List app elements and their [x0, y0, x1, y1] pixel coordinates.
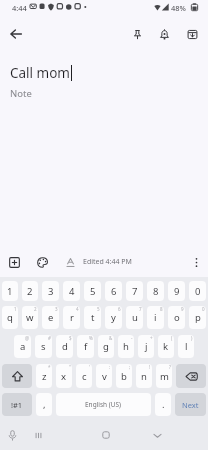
button[interactable]: Add — [2, 250, 26, 274]
button[interactable]: Hide keyboard — [144, 422, 170, 448]
button[interactable]: k — [158, 335, 174, 358]
staticText: m — [160, 370, 169, 383]
button[interactable]: 4 — [63, 281, 80, 301]
button[interactable]: b — [116, 364, 132, 388]
button[interactable]: . — [155, 393, 171, 416]
button[interactable]: 2 — [22, 281, 38, 301]
staticText: 6 — [111, 285, 117, 298]
staticText: 9 — [181, 306, 184, 312]
staticText: f — [84, 340, 88, 353]
staticText: 0 — [202, 306, 205, 312]
button[interactable]: r — [63, 306, 80, 329]
staticText: y — [111, 311, 116, 324]
staticText: 1 — [7, 285, 13, 298]
staticText: 7 — [132, 285, 138, 298]
button[interactable]: Next — [175, 393, 206, 416]
button[interactable]: j — [138, 335, 154, 358]
staticText: w — [26, 311, 34, 324]
button[interactable]: w — [22, 306, 38, 329]
button[interactable]: Reminder — [150, 20, 178, 48]
button[interactable]: Shift — [2, 364, 32, 388]
button[interactable]: o — [168, 306, 185, 329]
staticText: Next — [182, 400, 199, 410]
staticText: 48% — [171, 3, 186, 13]
staticText: ) — [191, 335, 193, 341]
button[interactable]: Archive — [178, 20, 206, 48]
staticText: x — [61, 370, 67, 383]
button[interactable]: f — [77, 335, 94, 358]
button[interactable]: q — [2, 306, 18, 329]
staticText: h — [123, 340, 129, 353]
button[interactable]: v — [96, 364, 112, 388]
staticText: l — [185, 340, 188, 353]
staticText: ( — [171, 335, 173, 341]
button[interactable]: i — [147, 306, 164, 329]
button[interactable]: More options — [184, 250, 208, 274]
staticText: i — [154, 311, 157, 324]
button[interactable]: Backspace — [176, 364, 206, 388]
button[interactable]: c — [76, 364, 92, 388]
staticText: e — [48, 311, 54, 324]
button[interactable]: p — [189, 306, 206, 329]
button[interactable]: Voice input — [0, 422, 25, 448]
button[interactable]: 8 — [147, 281, 164, 301]
button[interactable]: s — [35, 335, 52, 358]
staticText: !#1 — [11, 400, 23, 410]
button[interactable]: 9 — [168, 281, 185, 301]
staticText: . — [162, 398, 165, 411]
button[interactable]: u — [126, 306, 143, 329]
staticText: 4:44 — [12, 3, 27, 13]
staticText: " — [69, 364, 71, 370]
button[interactable]: t — [84, 306, 101, 329]
staticText: s — [41, 340, 46, 353]
button[interactable]: 3 — [42, 281, 59, 301]
button[interactable]: 6 — [105, 281, 122, 301]
button[interactable]: 5 — [84, 281, 101, 301]
button[interactable]: z — [36, 364, 52, 388]
button[interactable]: e — [42, 306, 59, 329]
staticText: g — [103, 340, 109, 353]
staticText: @ — [25, 335, 30, 341]
staticText: ' — [89, 364, 91, 370]
button[interactable]: Back — [2, 20, 30, 48]
staticText: q — [7, 311, 13, 324]
staticText: n — [141, 370, 147, 383]
staticText: 8 — [160, 306, 163, 312]
button[interactable]: Home — [93, 422, 119, 448]
staticText: r — [70, 311, 74, 324]
staticText: c — [82, 370, 87, 383]
staticText: k — [163, 340, 169, 353]
staticText: - — [131, 335, 133, 341]
button[interactable]: Background options — [30, 250, 54, 274]
button[interactable]: g — [98, 335, 114, 358]
staticText: 6 — [118, 306, 121, 312]
button[interactable]: n — [136, 364, 152, 388]
staticText: Note — [10, 87, 32, 100]
staticText: b — [121, 370, 127, 383]
staticText: 3 — [48, 285, 54, 298]
staticText: + — [150, 335, 153, 341]
staticText: a — [20, 340, 26, 353]
button[interactable]: Formatting — [58, 250, 82, 274]
button[interactable]: , — [36, 393, 52, 416]
staticText: Edited 4:44 PM — [83, 257, 132, 267]
staticText: v — [102, 370, 107, 383]
button[interactable]: !#1 — [2, 393, 32, 416]
button[interactable]: English (US) — [56, 393, 151, 416]
button[interactable]: y — [105, 306, 122, 329]
button[interactable]: x — [56, 364, 72, 388]
button[interactable]: 0 — [189, 281, 206, 301]
button[interactable]: Recent apps — [25, 422, 51, 448]
button[interactable]: h — [118, 335, 134, 358]
button[interactable]: 7 — [126, 281, 143, 301]
button[interactable]: l — [178, 335, 194, 358]
staticText: t — [91, 311, 95, 324]
staticText: 2 — [34, 306, 37, 312]
button[interactable]: m — [156, 364, 172, 388]
button[interactable]: 1 — [2, 281, 18, 301]
button[interactable]: d — [56, 335, 73, 358]
staticText: 7 — [139, 306, 142, 312]
button[interactable]: a — [14, 335, 31, 358]
button[interactable]: Pin — [123, 20, 151, 48]
staticText: j — [145, 340, 148, 353]
